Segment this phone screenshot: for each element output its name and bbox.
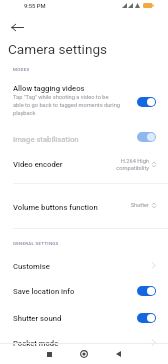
button[interactable]: Recents <box>39 344 59 364</box>
staticText: Shutter sound <box>13 314 62 323</box>
button[interactable]: Image stabilisation <box>0 127 168 151</box>
button[interactable]: Save location info <box>0 279 168 303</box>
staticText: Tap "Tag" while shooting a video to be a… <box>13 94 120 116</box>
button[interactable]: Toggle <box>137 97 156 107</box>
staticText: Customise <box>13 262 50 271</box>
button[interactable]: Toggle <box>137 286 156 296</box>
button[interactable]: Toggle <box>137 313 156 323</box>
staticText: Image stabilisation <box>13 135 79 144</box>
staticText: Shutter <box>110 202 149 209</box>
button[interactable]: Video encoder <box>0 152 168 178</box>
staticText: MODES <box>13 67 30 72</box>
button[interactable]: Customise <box>0 254 168 278</box>
button[interactable]: Home <box>74 344 94 364</box>
staticText: Pocket mode <box>13 339 59 348</box>
staticText: Allow tagging videos <box>13 84 85 93</box>
staticText: GENERAL SETTINGS <box>13 241 59 246</box>
staticText: Save location info <box>13 287 75 296</box>
button[interactable]: Back <box>7 17 27 37</box>
button[interactable]: Toggle <box>137 132 156 142</box>
button[interactable]: Shutter sound <box>0 306 168 330</box>
staticText: Video encoder <box>13 160 63 169</box>
staticText: 9:55 PM <box>24 3 46 10</box>
button[interactable]: Pocket mode <box>0 331 168 355</box>
button[interactable]: Back <box>108 344 128 364</box>
staticText: Camera settings <box>8 41 108 57</box>
button[interactable]: Allow tagging videos <box>0 79 168 123</box>
staticText: Volume buttons function <box>13 203 98 212</box>
staticText: H.264 High compatibility <box>96 158 149 171</box>
button[interactable]: Volume buttons function <box>0 194 168 218</box>
